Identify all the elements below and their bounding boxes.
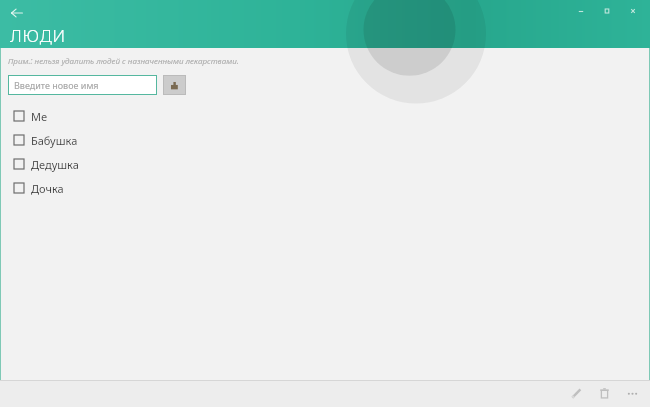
button[interactable]: More options: [618, 380, 646, 407]
button[interactable]: Дедушка: [0, 152, 650, 176]
staticText: Бабушка: [31, 133, 78, 148]
button[interactable]: Minimize: [568, 2, 594, 20]
staticText: ЛЮДИ: [10, 24, 66, 47]
staticText: Дочка: [31, 181, 64, 196]
staticText: Введите новое имя: [14, 79, 99, 91]
button[interactable]: Бабушка: [0, 128, 650, 152]
button[interactable]: Add person: [163, 75, 186, 95]
button[interactable]: Back: [4, 0, 30, 26]
button[interactable]: Me: [0, 104, 650, 128]
staticText: Дедушка: [31, 157, 79, 172]
staticText: Me: [31, 109, 48, 124]
button[interactable]: Введите новое имя: [8, 75, 157, 95]
button[interactable]: Edit: [562, 380, 590, 407]
button[interactable]: Дочка: [0, 176, 650, 200]
button[interactable]: Delete: [590, 380, 618, 407]
staticText: Прим.: нельзя удалить людей с назначенны…: [8, 55, 239, 66]
button[interactable]: Maximize: [594, 2, 620, 20]
button[interactable]: Close: [620, 2, 646, 20]
